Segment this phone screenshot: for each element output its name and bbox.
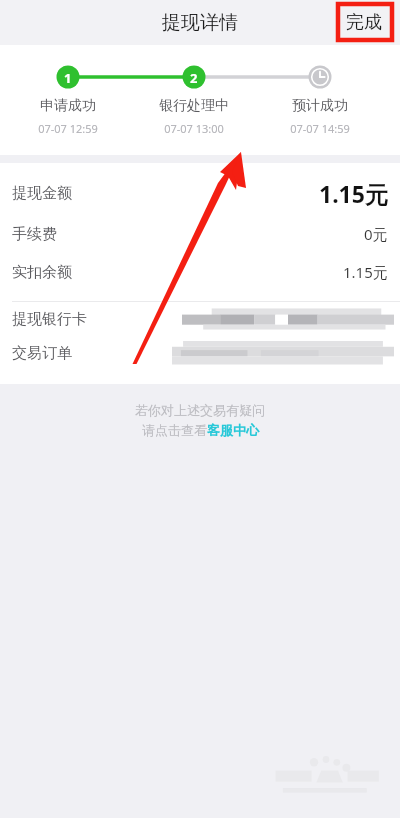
staticText: 实扣余额 [12, 263, 72, 282]
button[interactable]: 提现金额 [0, 171, 400, 215]
staticText: 客服中心 [207, 422, 259, 438]
staticText: 1 [64, 69, 72, 87]
staticText: 07-07 12:59 [38, 121, 98, 136]
button[interactable]: 提现银行卡 [0, 302, 400, 336]
button[interactable]: 手续费 [0, 215, 400, 253]
staticText: 申请成功 [40, 97, 96, 115]
staticText: 1.15元 [343, 262, 388, 282]
button[interactable]: 实扣余额 [0, 253, 400, 291]
staticText: 2 [190, 69, 198, 87]
staticText: 预计成功 [292, 97, 348, 115]
button[interactable]: 交易订单 [0, 336, 400, 370]
staticText: 0元 [364, 224, 388, 244]
button[interactable]: 完成 [336, 5, 392, 40]
staticText: 提现银行卡 [12, 310, 87, 329]
staticText: 手续费 [12, 225, 57, 244]
staticText: 07-07 14:59 [290, 121, 350, 136]
staticText: 07-07 13:00 [164, 121, 224, 136]
staticText: 完成 [346, 11, 382, 34]
staticText: 银行处理中 [159, 97, 229, 115]
staticText: 若你对上述交易有疑问 [0, 402, 400, 418]
staticText: 提现金额 [12, 184, 72, 203]
staticText: 1.15元 [319, 178, 388, 209]
staticText: 提现详情 [162, 11, 238, 35]
button[interactable]: 客服中心 [207, 422, 259, 438]
staticText: 请点击查看 [142, 422, 207, 438]
staticText: 交易订单 [12, 344, 72, 363]
